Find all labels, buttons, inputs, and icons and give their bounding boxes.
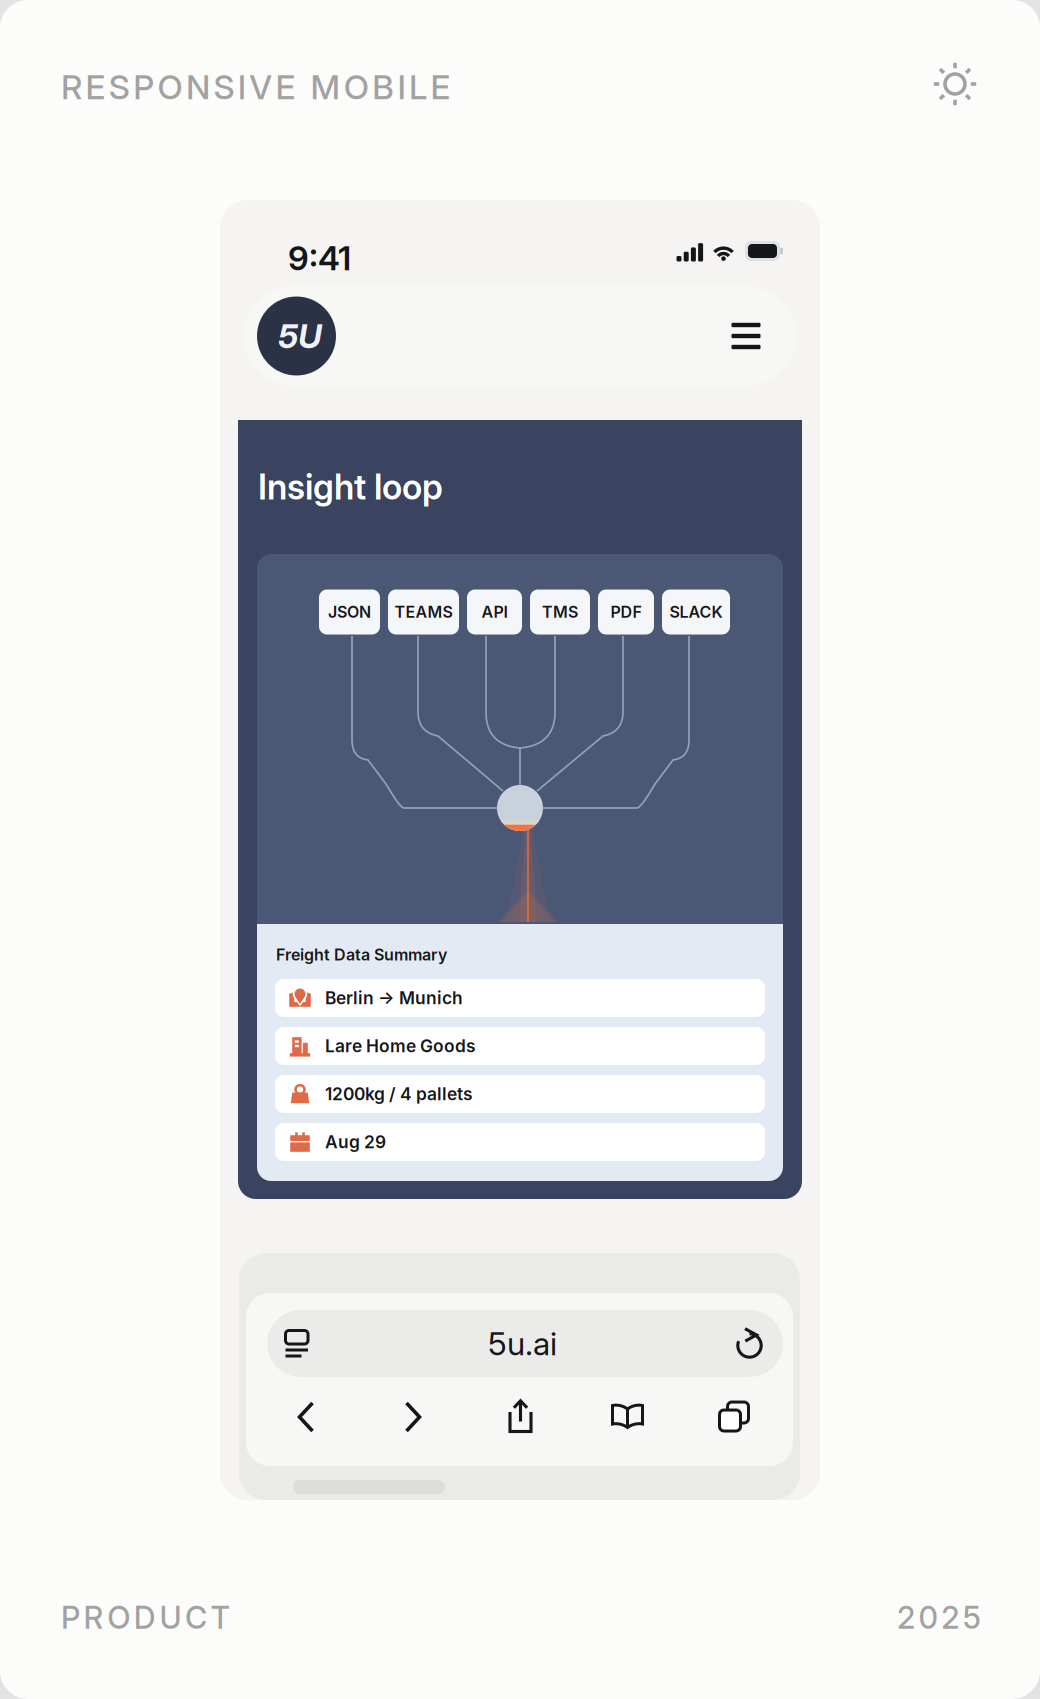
staticText: JSON [328, 602, 371, 622]
staticText: 9:41 [288, 238, 351, 278]
button[interactable]: Reload [731, 1323, 771, 1363]
staticText: PDF [610, 602, 641, 622]
button[interactable]: Aug 29 [275, 1123, 765, 1161]
staticText: TEAMS [394, 602, 452, 622]
button[interactable]: SLACK [662, 589, 730, 634]
button[interactable]: Bookmarks [574, 1386, 681, 1448]
staticText: 5U [278, 316, 322, 356]
staticText: 2025 [897, 1599, 992, 1636]
button[interactable]: Appearance [930, 59, 980, 109]
button[interactable]: TMS [530, 589, 590, 634]
button[interactable]: Back [253, 1386, 360, 1448]
button[interactable]: Page settings [277, 1323, 317, 1363]
button[interactable]: Menu [722, 313, 770, 359]
button[interactable]: Share [467, 1386, 574, 1448]
button[interactable]: Forward [360, 1386, 467, 1448]
staticText: 5u.ai [488, 1324, 557, 1363]
staticText: Berlin → Munich [325, 987, 463, 1008]
staticText: Aug 29 [325, 1131, 386, 1152]
staticText: 1200kg / 4 pallets [325, 1083, 473, 1104]
button[interactable]: TEAMS [388, 589, 459, 634]
staticText: Freight Data Summary [276, 945, 447, 964]
staticText: Insight loop [258, 466, 443, 508]
button[interactable]: API [467, 589, 522, 634]
staticText: API [481, 602, 507, 622]
button[interactable]: Tabs [681, 1386, 788, 1448]
button[interactable]: JSON [319, 589, 380, 634]
button[interactable]: Lare Home Goods [275, 1027, 765, 1065]
button[interactable]: Berlin → Munich [275, 979, 765, 1017]
staticText: RESPONSIVE MOBILE [61, 67, 462, 107]
button[interactable]: PDF [598, 589, 654, 634]
staticText: Lare Home Goods [325, 1035, 476, 1056]
button[interactable]: 1200kg / 4 pallets [275, 1075, 765, 1113]
staticText: TMS [542, 602, 578, 622]
staticText: PRODUCT [61, 1599, 241, 1636]
staticText: SLACK [669, 602, 722, 622]
